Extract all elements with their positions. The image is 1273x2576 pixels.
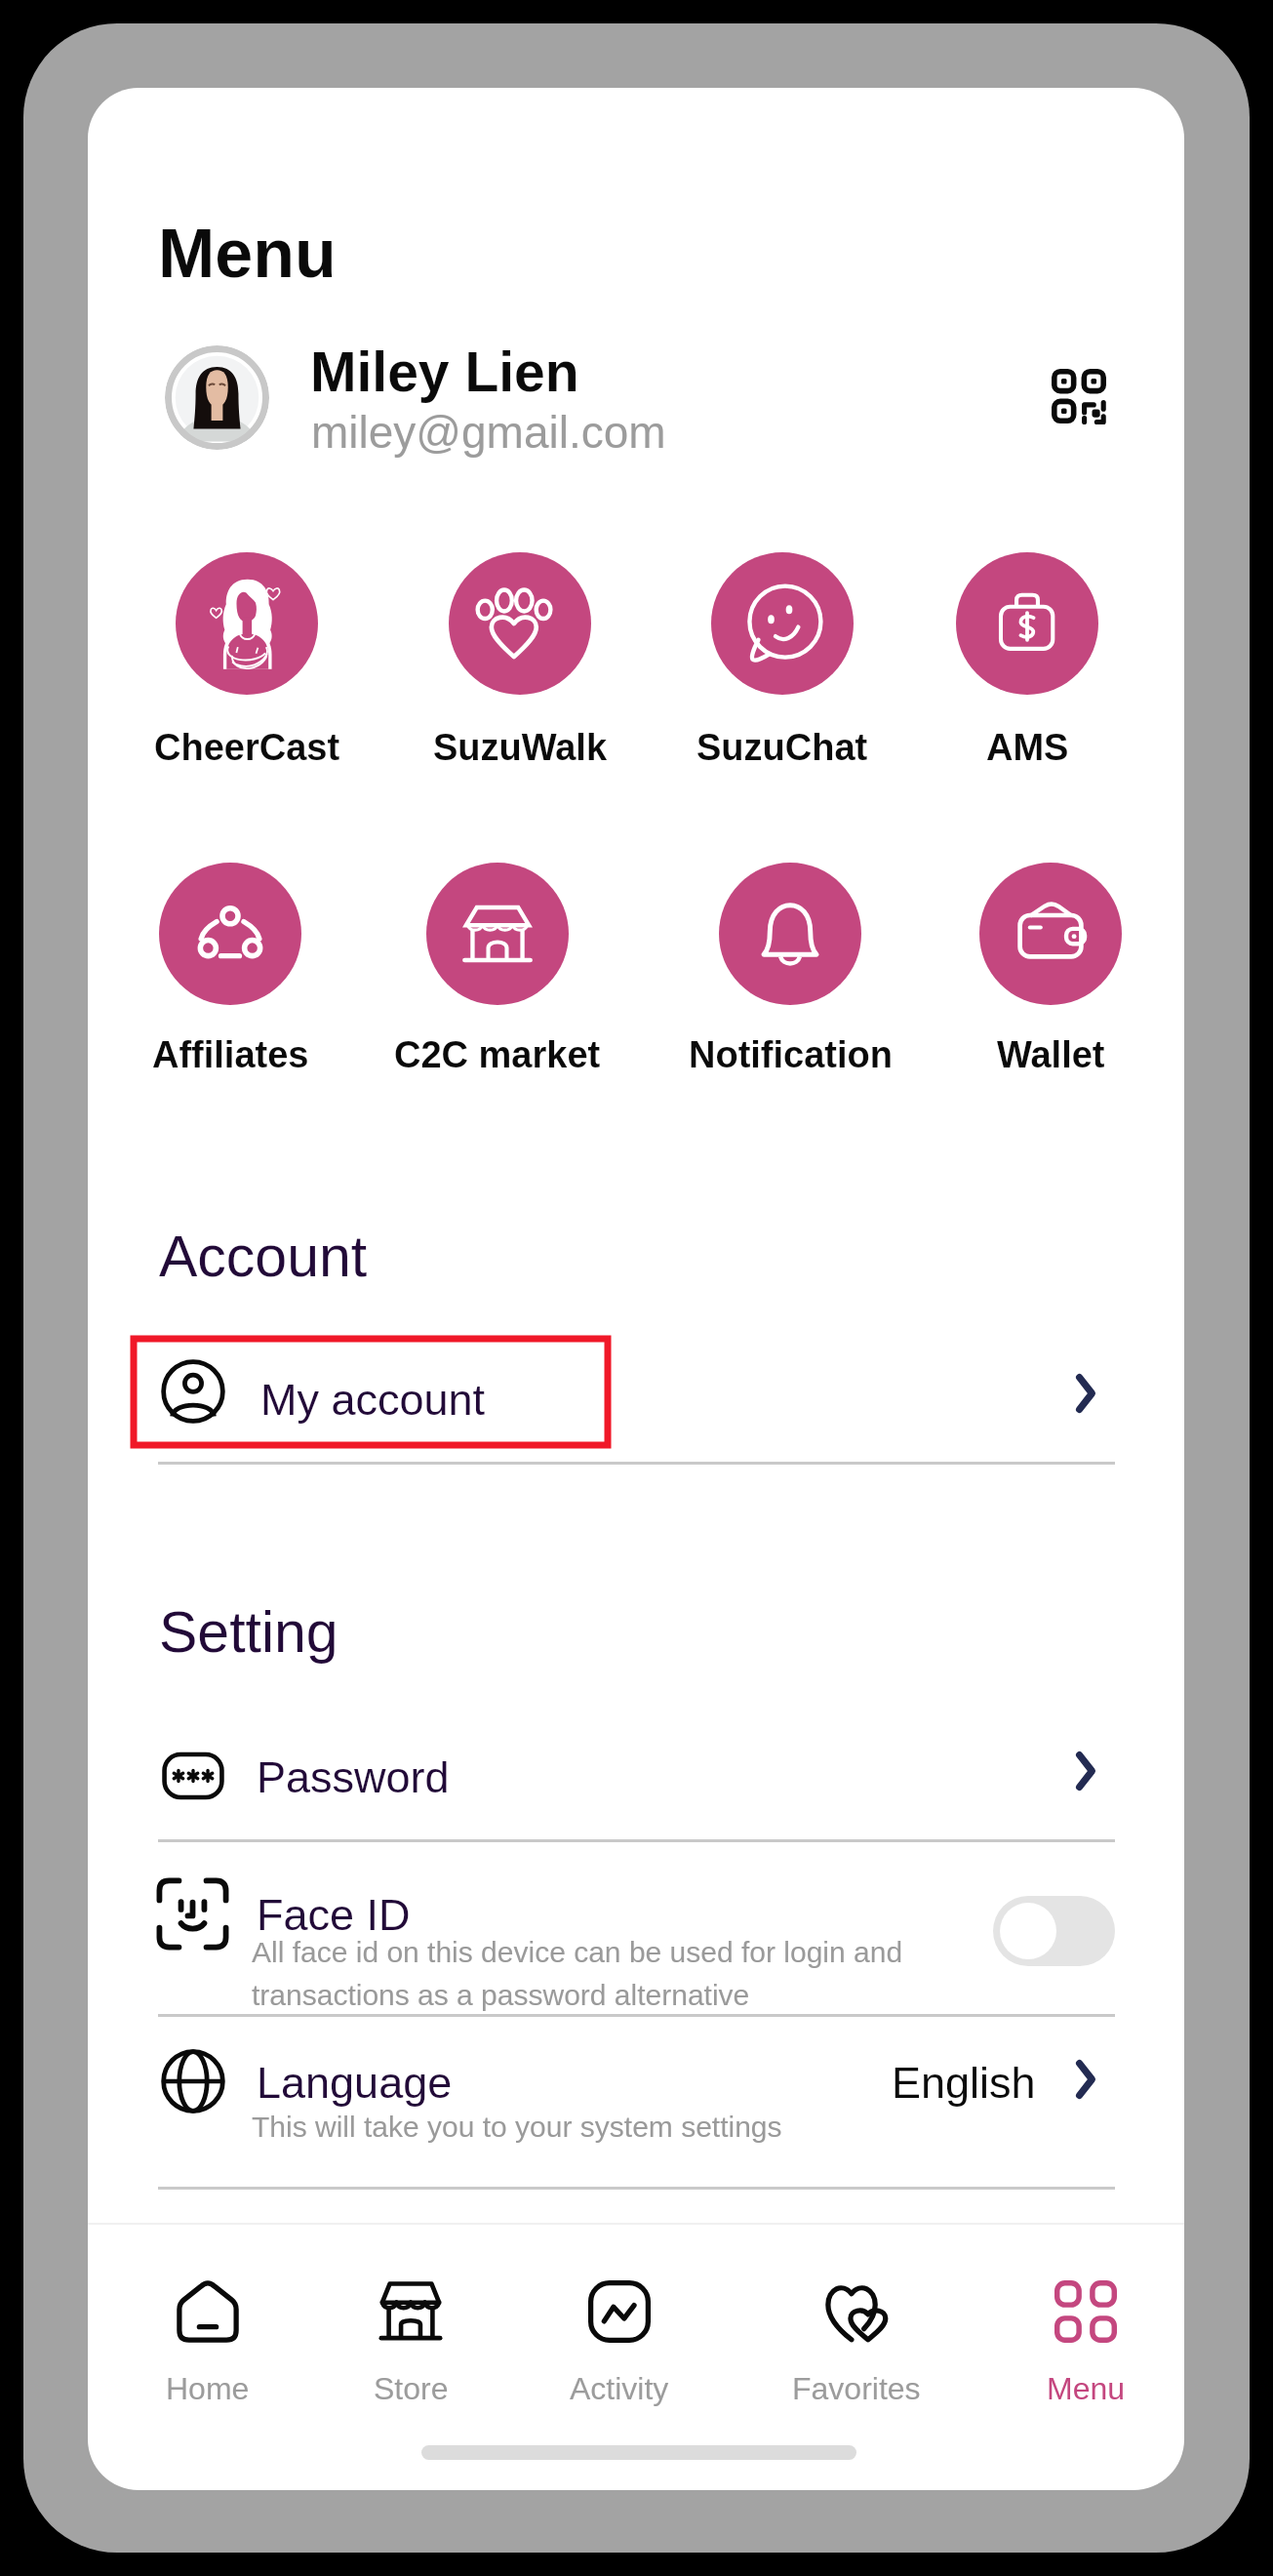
staticText: Store <box>374 2371 449 2406</box>
button[interactable]: Notification <box>719 863 861 1005</box>
button[interactable]: Home <box>125 2259 291 2415</box>
staticText: Language <box>257 2058 453 2107</box>
staticText: Setting <box>159 1600 338 1665</box>
staticText: All face id on this device can be used f… <box>252 1936 925 2012</box>
staticText: Favorites <box>792 2371 921 2406</box>
button[interactable]: Face ID <box>158 1864 1115 2010</box>
button[interactable]: Password <box>158 1741 1115 1819</box>
staticText: AMS <box>986 727 1069 768</box>
button[interactable]: Store <box>328 2259 494 2415</box>
staticText: C2C market <box>394 1034 601 1075</box>
button[interactable]: Scan QR code <box>1042 359 1116 433</box>
staticText: Notification <box>689 1034 893 1075</box>
button[interactable]: Favorites <box>774 2259 939 2415</box>
staticText: My account <box>260 1375 486 1424</box>
staticText: SuzuWalk <box>433 727 608 768</box>
staticText: Account <box>159 1225 368 1289</box>
staticText: Wallet <box>997 1034 1105 1075</box>
staticText: English <box>892 2058 1036 2107</box>
staticText: Miley Lien <box>310 341 579 403</box>
staticText: This will take you to your system settin… <box>252 2111 782 2144</box>
button[interactable]: Affiliates <box>159 863 301 1005</box>
button[interactable]: C2C market <box>426 863 569 1005</box>
button[interactable]: CheerCast <box>176 552 318 695</box>
staticText: Menu <box>1047 2371 1126 2406</box>
staticText: Affiliates <box>152 1034 309 1075</box>
button[interactable]: My account <box>134 1339 1109 1445</box>
button[interactable]: Face ID toggle <box>993 1896 1115 1966</box>
button[interactable]: Menu <box>1003 2259 1169 2415</box>
staticText: CheerCast <box>154 727 340 768</box>
staticText: Face ID <box>257 1890 411 1939</box>
button[interactable]: SuzuWalk <box>449 552 591 695</box>
button[interactable]: Language <box>158 2039 1115 2166</box>
staticText: Password <box>257 1752 450 1801</box>
button[interactable]: Wallet <box>979 863 1122 1005</box>
staticText: miley@gmail.com <box>311 407 666 457</box>
staticText: Activity <box>570 2371 669 2406</box>
button[interactable]: SuzuChat <box>711 552 854 695</box>
button[interactable]: Activity <box>537 2259 702 2415</box>
button[interactable]: AMS <box>956 552 1098 695</box>
staticText: Home <box>166 2371 250 2406</box>
staticText: SuzuChat <box>696 727 868 768</box>
staticText: Menu <box>158 216 337 292</box>
